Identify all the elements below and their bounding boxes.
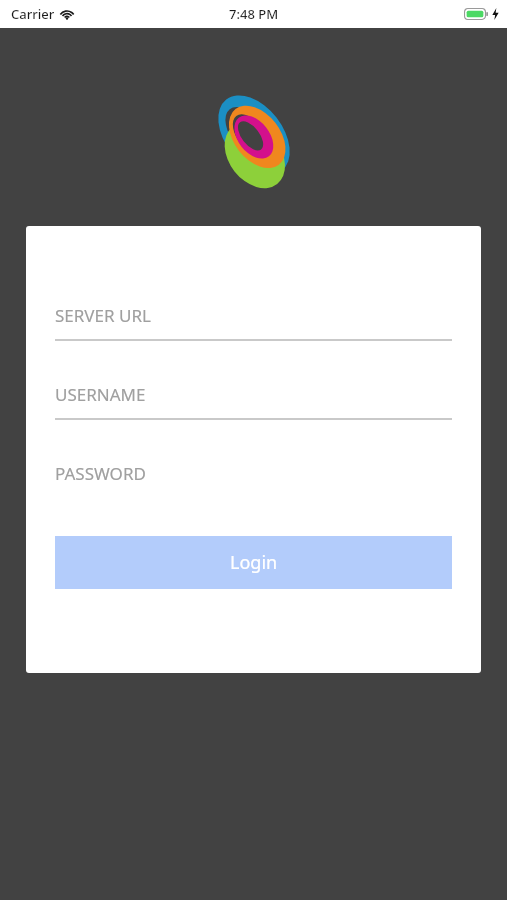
staticText: SERVER URL — [55, 304, 151, 327]
staticText: Carrier — [11, 5, 55, 23]
staticText: USERNAME — [55, 383, 146, 406]
button[interactable]: Server URL field — [55, 302, 452, 341]
button[interactable]: Username field — [55, 381, 452, 420]
staticText: 7:48 PM — [229, 5, 279, 23]
staticText: PASSWORD — [55, 462, 146, 485]
button[interactable]: Login — [55, 536, 452, 589]
staticText: Login — [230, 550, 278, 575]
button[interactable]: Password field — [55, 460, 452, 499]
